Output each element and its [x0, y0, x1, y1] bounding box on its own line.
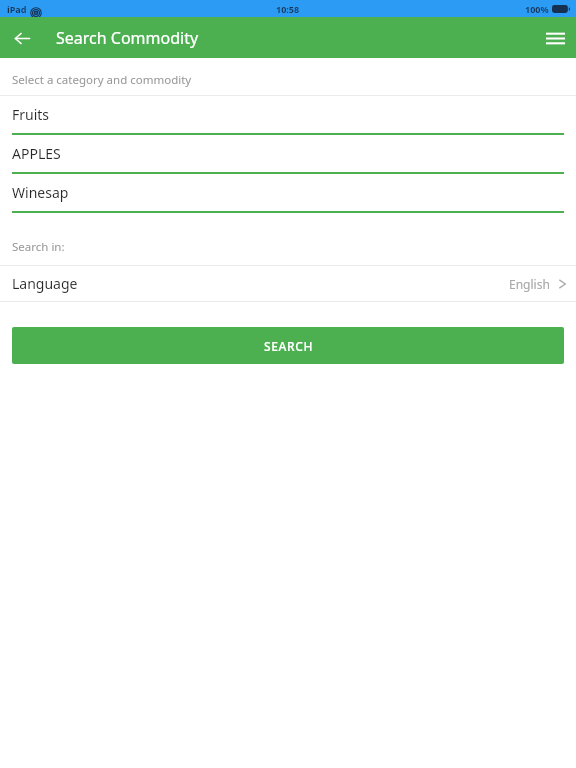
- button[interactable]: Menu: [540, 23, 570, 53]
- button[interactable]: APPLES: [0, 135, 576, 174]
- staticText: SEARCH: [264, 338, 313, 354]
- staticText: Select a category and commodity: [12, 72, 576, 88]
- staticText: Search Commodity: [56, 27, 199, 49]
- button[interactable]: Winesap: [0, 174, 576, 213]
- staticText: 10:58: [276, 3, 300, 15]
- staticText: Winesap: [12, 183, 69, 202]
- staticText: Fruits: [12, 105, 50, 124]
- staticText: 100%: [525, 3, 549, 15]
- button[interactable]: Fruits: [0, 96, 576, 135]
- button[interactable]: SEARCH: [12, 327, 564, 364]
- button[interactable]: Back: [8, 24, 36, 52]
- button[interactable]: Language: [0, 266, 576, 301]
- staticText: Search in:: [12, 239, 576, 255]
- staticText: APPLES: [12, 144, 61, 163]
- staticText: iPad: [7, 3, 27, 15]
- staticText: Language: [12, 274, 78, 293]
- staticText: English: [509, 276, 550, 292]
